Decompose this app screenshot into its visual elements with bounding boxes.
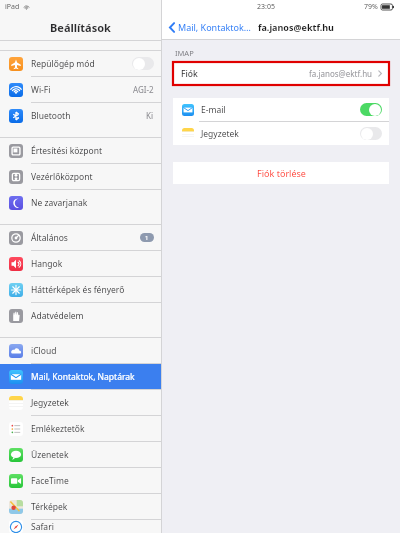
staticText: Ne zavarjanak — [31, 197, 88, 209]
button[interactable]: E-mail — [173, 98, 389, 121]
staticText: Üzenetek — [31, 449, 69, 461]
button[interactable]: FaceTime — [0, 468, 161, 493]
staticText: Beállítások — [50, 20, 111, 35]
staticText: Fiók — [181, 68, 198, 80]
staticText: Hangok — [31, 258, 63, 270]
button[interactable]: Jegyzetek — [0, 390, 161, 415]
staticText: AGI-2 — [133, 84, 154, 95]
button[interactable]: Jegyzetek — [173, 122, 389, 145]
staticText: 23:05 — [257, 2, 275, 12]
button[interactable]: Általános — [0, 225, 161, 250]
button[interactable]: Bluetooth — [0, 103, 161, 128]
staticText: iPad — [5, 2, 20, 12]
staticText: Térképek — [31, 501, 68, 513]
button[interactable]: Térképek — [0, 494, 161, 519]
button[interactable]: Mail, Kontaktok… — [167, 21, 253, 33]
button[interactable]: Toggle — [360, 127, 382, 140]
button[interactable]: Fiók — [173, 62, 389, 85]
staticText: Ki — [146, 110, 154, 121]
staticText: Bluetooth — [31, 110, 71, 122]
button[interactable]: Hangok — [0, 251, 161, 276]
staticText: Háttérképek és fényerő — [31, 284, 125, 296]
button[interactable]: Safari — [0, 520, 161, 533]
button[interactable]: iCloud — [0, 338, 161, 363]
staticText: Emlékeztetők — [31, 423, 85, 435]
button[interactable]: Mail, Kontaktok, Naptárak — [0, 364, 161, 389]
staticText: Jegyzetek — [31, 397, 69, 409]
staticText: E-mail — [201, 104, 226, 116]
staticText: fa.janos@ektf.hu — [258, 21, 334, 33]
button[interactable]: Fiók törlése — [173, 162, 389, 184]
staticText: fa.janos@ektf.hu — [309, 68, 373, 79]
staticText: iCloud — [31, 345, 57, 357]
staticText: Értesítési központ — [31, 145, 102, 157]
staticText: Vezérlőközpont — [31, 171, 93, 183]
staticText: Safari — [31, 521, 54, 533]
button[interactable]: Vezérlőközpont — [0, 164, 161, 189]
button[interactable]: Toggle — [360, 103, 382, 116]
button[interactable]: Ne zavarjanak — [0, 190, 161, 215]
button[interactable]: Adatvédelem — [0, 303, 161, 328]
button[interactable]: Üzenetek — [0, 442, 161, 467]
staticText: Mail, Kontaktok, Naptárak — [31, 371, 135, 383]
staticText: Általános — [31, 232, 68, 244]
staticText: Adatvédelem — [31, 310, 84, 322]
button[interactable]: Emlékeztetők — [0, 416, 161, 441]
staticText: Mail, Kontaktok… — [178, 21, 251, 33]
staticText: IMAP — [175, 48, 194, 58]
staticText: Repülőgép mód — [31, 58, 95, 70]
staticText: Wi-Fi — [31, 84, 51, 96]
staticText: 1 — [145, 234, 149, 242]
button[interactable]: Repülőgép mód — [0, 51, 161, 76]
staticText: FaceTime — [31, 475, 69, 487]
button[interactable]: Értesítési központ — [0, 138, 161, 163]
button[interactable]: Háttérképek és fényerő — [0, 277, 161, 302]
staticText: Jegyzetek — [201, 128, 239, 140]
staticText: Fiók törlése — [257, 167, 306, 179]
button[interactable]: Toggle — [132, 57, 154, 70]
button[interactable]: Wi-Fi — [0, 77, 161, 102]
staticText: 79% — [364, 2, 378, 12]
